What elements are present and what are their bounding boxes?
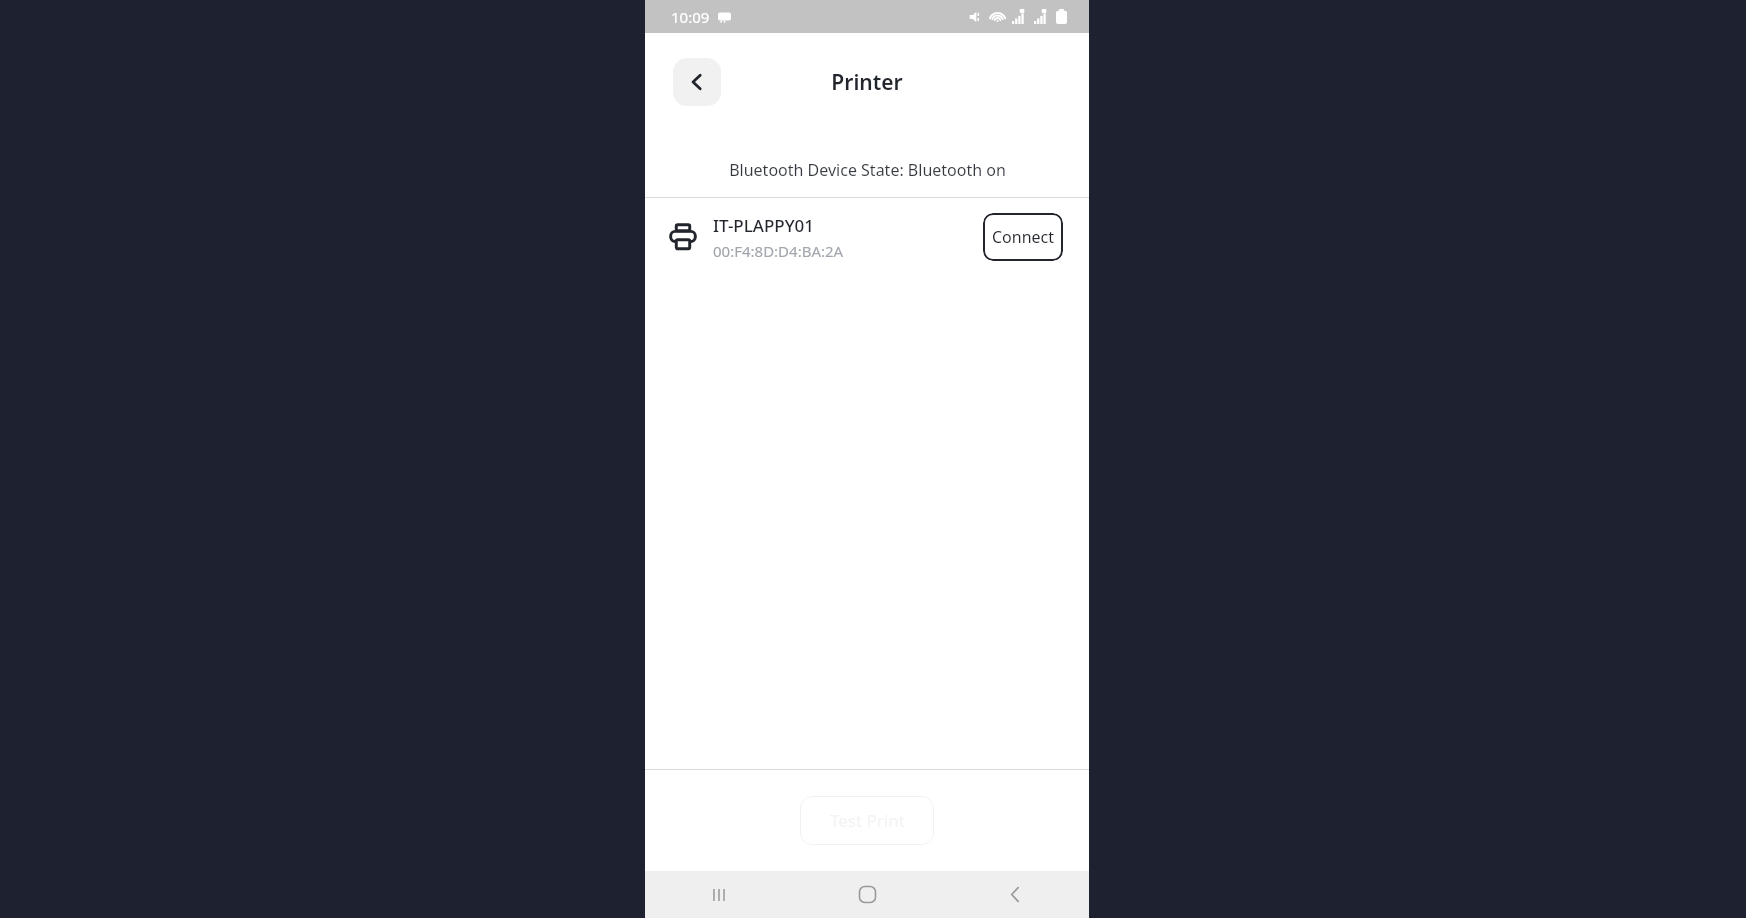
staticText: 00:F4:8D:D4:BA:2A <box>713 241 844 261</box>
staticText: Bluetooth Device State: Bluetooth on <box>729 159 1006 181</box>
button[interactable]: Test Print <box>800 796 934 845</box>
button[interactable]: Back <box>673 58 721 106</box>
button[interactable]: Recents <box>645 871 793 918</box>
button[interactable]: IT-PLAPPY01 <box>645 198 1089 276</box>
staticText: IT-PLAPPY01 <box>713 214 815 237</box>
button[interactable]: Back <box>941 871 1089 918</box>
staticText: Connect <box>992 226 1055 248</box>
staticText: Test Print <box>830 809 905 832</box>
button[interactable]: Home <box>793 871 941 918</box>
staticText: Printer <box>831 68 903 97</box>
button[interactable]: Connect <box>983 213 1063 261</box>
staticText: 10:09 <box>671 7 710 27</box>
